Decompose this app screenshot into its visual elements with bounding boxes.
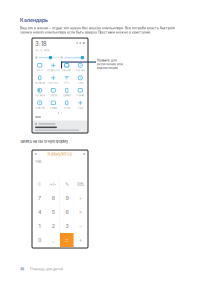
button[interactable]: Звонок (73, 63, 87, 72)
staticText: Энергия (35, 106, 44, 109)
button[interactable]: Точка (60, 100, 73, 110)
staticText: Фонарик (35, 81, 45, 84)
button[interactable]: 0 (32, 233, 46, 247)
button[interactable]: Back (35, 153, 37, 155)
staticText: Ночной (35, 94, 44, 97)
staticText: Помощь для детей (30, 267, 63, 271)
button[interactable]: + (74, 233, 88, 247)
staticText: Экран (50, 94, 57, 97)
staticText: +/− (50, 182, 57, 186)
button[interactable]: 3 (60, 219, 74, 233)
button[interactable]: 8 (46, 191, 60, 205)
staticText: 48 (20, 267, 24, 271)
button[interactable]: GPS (60, 75, 73, 85)
staticText: Звук (78, 81, 83, 84)
button[interactable]: % (60, 177, 74, 191)
staticText: 2 (52, 223, 55, 229)
staticText: Мобил. (62, 69, 71, 72)
staticText: − (79, 223, 83, 229)
staticText: Пн, 12 июля (35, 49, 49, 52)
button[interactable]: 2 (46, 219, 60, 233)
button[interactable]: Режим (73, 88, 87, 97)
staticText: % (65, 182, 69, 186)
staticText: 3:18 (35, 40, 47, 47)
staticText: Запись (50, 106, 57, 109)
button[interactable]: − (74, 219, 88, 233)
staticText: DEL (77, 182, 84, 186)
staticText: + (79, 237, 83, 243)
staticText: 168 (35, 159, 41, 164)
staticText: Точка (64, 106, 70, 109)
staticText: Данные (63, 94, 71, 97)
button[interactable]: , (46, 233, 60, 247)
button[interactable]: 6 (60, 205, 74, 219)
button[interactable]: Звук (73, 75, 87, 85)
staticText: C (38, 182, 41, 186)
button[interactable]: Ещё (73, 100, 87, 110)
button[interactable]: Bluetooth (46, 63, 60, 72)
staticText: 5 (52, 209, 55, 215)
button[interactable]: DEL (74, 177, 88, 191)
staticText: Режим (76, 94, 84, 97)
staticText: = (65, 237, 69, 243)
button[interactable]: × (74, 205, 88, 219)
staticText: ÷ (79, 195, 83, 201)
button[interactable]: = (60, 233, 74, 247)
button[interactable]: Ночной (33, 88, 46, 97)
staticText: Автопов. (48, 81, 59, 84)
staticText: Запись на льготную форму (20, 139, 68, 144)
staticText: , (52, 237, 54, 243)
button[interactable]: 4 (32, 205, 46, 219)
staticText: GPS (64, 81, 70, 84)
button[interactable]: Экран (46, 88, 60, 97)
staticText: Ещё (78, 106, 83, 109)
button[interactable]: +/− (46, 177, 60, 191)
staticText: Bluetooth (47, 69, 59, 72)
button[interactable]: Wi-Fi (33, 63, 46, 72)
staticText: Календарь (20, 17, 48, 23)
staticText: 9 (65, 195, 68, 201)
staticText: 3 (65, 223, 68, 229)
button[interactable]: Фонарик (33, 75, 46, 85)
button[interactable]: Данные (60, 88, 73, 97)
button[interactable]: Энергия (33, 100, 46, 110)
staticText: 0 (38, 237, 41, 243)
staticText: Ваш его в жизни – отдых: его нужно без в… (20, 26, 175, 34)
staticText: Калькулятор (47, 151, 72, 157)
staticText: Звонок (76, 69, 85, 72)
staticText: 7 (38, 195, 41, 201)
button[interactable]: Автопов. (46, 75, 60, 85)
staticText: 4 (38, 209, 41, 215)
staticText: × (79, 209, 83, 215)
button[interactable]: 5 (46, 205, 60, 219)
button[interactable]: Мобил. (60, 63, 73, 72)
staticText: Wi-Fi (37, 69, 43, 72)
button[interactable]: Запись (46, 100, 60, 110)
button[interactable]: 1 (32, 219, 46, 233)
staticText: 8 (52, 195, 55, 201)
button[interactable]: 9 (60, 191, 74, 205)
button[interactable]: C (32, 177, 46, 191)
button[interactable]: 7 (32, 191, 46, 205)
button[interactable]: More (83, 153, 85, 155)
button[interactable]: ÷ (74, 191, 88, 205)
staticText: 1 (38, 223, 40, 229)
staticText: 6 (65, 209, 68, 215)
staticText: Нажмите для включения или выключения (97, 58, 123, 70)
